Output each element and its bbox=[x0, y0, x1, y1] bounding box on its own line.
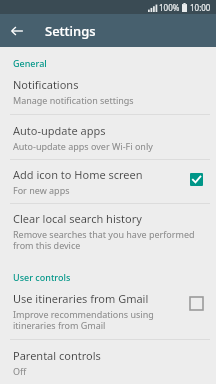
button[interactable]: Clear local search history bbox=[0, 204, 216, 259]
staticText: Use itineraries from Gmail bbox=[13, 291, 149, 306]
staticText: Notifications bbox=[13, 77, 79, 92]
staticText: Auto-update apps over Wi-Fi only bbox=[13, 140, 153, 152]
staticText: Auto-update apps bbox=[13, 123, 106, 138]
button[interactable]: Back bbox=[0, 14, 33, 47]
button[interactable]: Auto-update apps bbox=[0, 115, 216, 159]
staticText: Clear local search history bbox=[13, 211, 142, 226]
staticText: 10:00 bbox=[190, 2, 211, 13]
staticText: Off bbox=[13, 365, 27, 375]
staticText: 100% bbox=[159, 2, 180, 13]
staticText: User controls bbox=[13, 271, 71, 283]
button[interactable]: Use itineraries from Gmail bbox=[0, 291, 216, 339]
staticText: Parental controls bbox=[13, 348, 101, 363]
staticText: Remove searches that you have performed … bbox=[13, 228, 206, 251]
button[interactable]: Add icon to Home screen bbox=[186, 169, 206, 189]
button[interactable]: Parental controls bbox=[0, 340, 216, 384]
staticText: Improve recommendations using itinerarie… bbox=[13, 308, 180, 331]
staticText: Add icon to Home screen bbox=[13, 167, 143, 182]
staticText: Settings bbox=[45, 22, 96, 40]
button[interactable]: Notifications bbox=[0, 77, 216, 114]
staticText: For new apps bbox=[13, 184, 70, 196]
button[interactable]: Add icon to Home screen bbox=[0, 160, 216, 203]
staticText: General bbox=[13, 57, 47, 69]
button[interactable]: Use itineraries from Gmail bbox=[186, 293, 206, 313]
staticText: Manage notification settings bbox=[13, 94, 134, 106]
